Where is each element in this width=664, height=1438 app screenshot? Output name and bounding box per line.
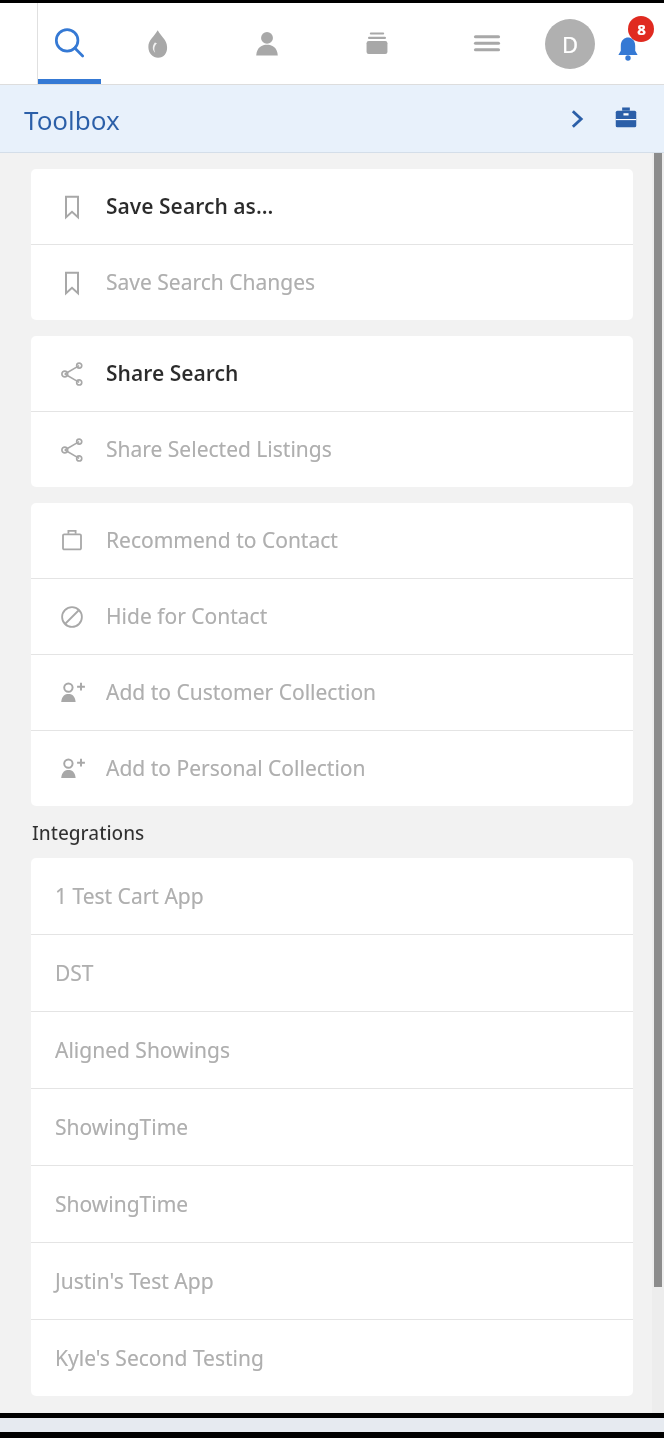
button[interactable]: Notifications bbox=[600, 16, 656, 72]
staticText: Aligned Showings bbox=[55, 1036, 231, 1065]
staticText: ShowingTime bbox=[55, 1190, 189, 1219]
staticText: DST bbox=[55, 959, 94, 988]
button[interactable]: Recommend to Contact bbox=[31, 503, 633, 578]
button[interactable]: Aligned Showings bbox=[31, 1012, 633, 1088]
staticText: Hide for Contact bbox=[106, 602, 268, 631]
button[interactable]: DST bbox=[31, 935, 633, 1011]
button[interactable]: Cart bbox=[322, 3, 432, 85]
staticText: Kyle's Second Testing bbox=[55, 1344, 264, 1373]
staticText: 1 Test Cart App bbox=[55, 882, 204, 911]
button[interactable]: Search bbox=[38, 3, 101, 85]
button[interactable]: Profile bbox=[542, 16, 598, 72]
staticText: ShowingTime bbox=[55, 1113, 189, 1142]
button[interactable]: Save Search as... bbox=[31, 169, 633, 244]
staticText: Integrations bbox=[32, 820, 145, 846]
staticText: Add to Customer Collection bbox=[106, 678, 377, 707]
staticText: 8 bbox=[637, 19, 646, 39]
staticText: D bbox=[562, 29, 579, 59]
button[interactable]: ShowingTime bbox=[31, 1166, 633, 1242]
staticText: Share Search bbox=[106, 359, 239, 388]
button[interactable]: Hot sheet bbox=[101, 3, 212, 85]
button[interactable]: Menu bbox=[432, 3, 542, 85]
button[interactable]: Share Selected Listings bbox=[31, 412, 633, 487]
staticText: Recommend to Contact bbox=[106, 526, 338, 555]
staticText: Justin's Test App bbox=[55, 1267, 214, 1296]
button[interactable]: 1 Test Cart App bbox=[31, 858, 633, 934]
button[interactable]: Save Search Changes bbox=[31, 245, 633, 320]
button[interactable]: Share Search bbox=[31, 336, 633, 411]
button[interactable]: Add to Personal Collection bbox=[31, 731, 633, 806]
staticText: Save Search as... bbox=[106, 192, 274, 221]
button[interactable]: ShowingTime bbox=[31, 1089, 633, 1165]
staticText: Save Search Changes bbox=[106, 268, 316, 297]
button[interactable]: Kyle's Second Testing bbox=[31, 1320, 633, 1396]
button[interactable]: Justin's Test App bbox=[31, 1243, 633, 1319]
button[interactable]: Toolbox bbox=[0, 85, 664, 153]
button[interactable]: Contacts bbox=[212, 3, 322, 85]
button[interactable]: Hide for Contact bbox=[31, 579, 633, 654]
staticText: Toolbox bbox=[24, 102, 120, 137]
button[interactable]: Add to Customer Collection bbox=[31, 655, 633, 730]
staticText: Add to Personal Collection bbox=[106, 754, 366, 783]
staticText: Share Selected Listings bbox=[106, 435, 332, 464]
